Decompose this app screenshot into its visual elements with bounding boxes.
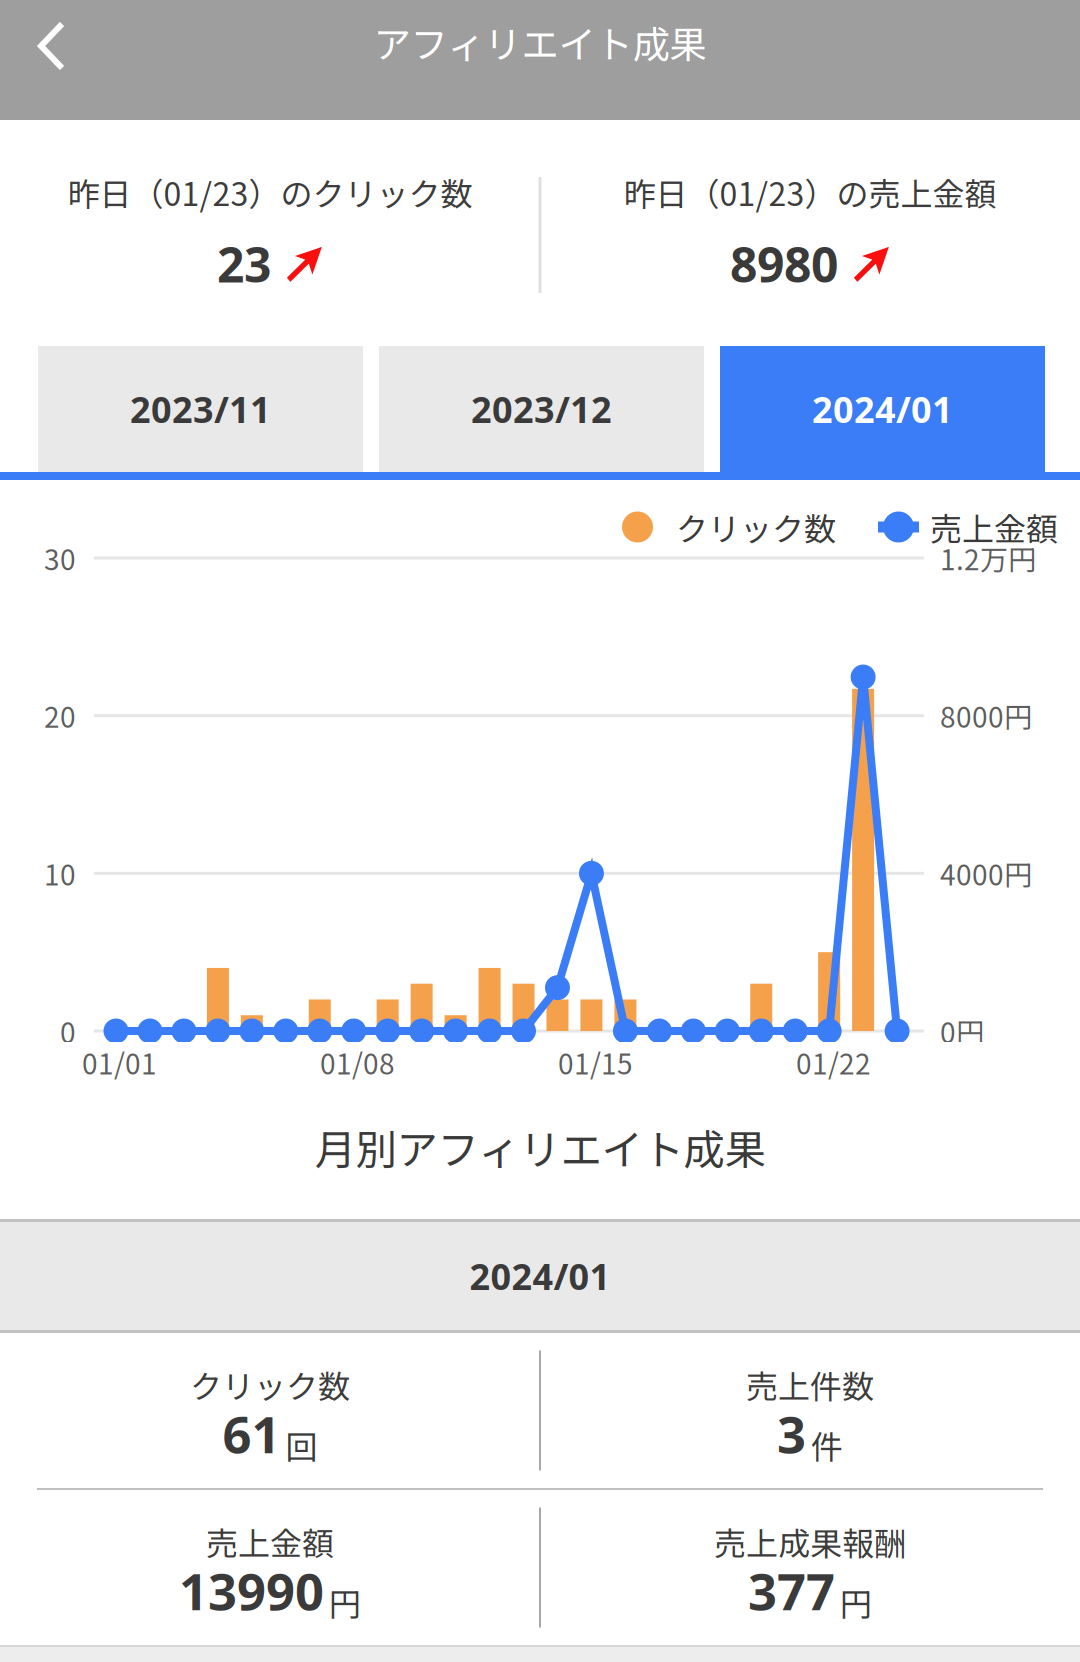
staticText: 昨日（01/23）のクリック数	[67, 169, 472, 215]
staticText: 4000円	[940, 853, 1032, 894]
staticText: 2024/01	[812, 384, 953, 433]
staticText: 8980	[730, 231, 838, 297]
button[interactable]: 2023/11	[38, 346, 363, 472]
staticText: 61	[222, 1399, 280, 1468]
staticText: 円	[329, 1579, 361, 1625]
staticText: 30	[44, 538, 76, 578]
button[interactable]: 2024/01	[720, 346, 1045, 472]
staticText: 売上件数	[746, 1361, 874, 1408]
staticText: 23	[217, 231, 271, 297]
staticText: 回	[285, 1422, 317, 1468]
staticText: 2023/12	[471, 384, 612, 433]
staticText: 件	[811, 1422, 843, 1468]
staticText: 01/08	[320, 1042, 395, 1082]
staticText: 0	[60, 1011, 76, 1051]
staticText: 円	[840, 1579, 872, 1625]
staticText: 10	[44, 853, 76, 894]
staticText: 377	[748, 1556, 835, 1625]
staticText: 3	[777, 1399, 806, 1468]
button[interactable]: 2023/12	[379, 346, 704, 472]
staticText: 1.2万円	[940, 538, 1036, 578]
button[interactable]: Back	[0, 0, 92, 118]
staticText: 01/01	[82, 1042, 157, 1082]
staticText: 20	[44, 695, 76, 736]
staticText: 昨日（01/23）の売上金額	[623, 169, 996, 215]
staticText: 月別アフィリエイト成果	[314, 1117, 765, 1177]
staticText: クリック数	[676, 504, 836, 550]
staticText: 01/22	[796, 1042, 871, 1082]
staticText: 13990	[179, 1556, 324, 1625]
staticText: 0円	[940, 1011, 984, 1051]
staticText: クリック数	[190, 1361, 350, 1408]
staticText: 2023/11	[130, 384, 271, 433]
staticText: アフィリエイト成果	[373, 15, 706, 69]
staticText: 売上成果報酬	[714, 1518, 906, 1565]
staticText: 2024/01	[469, 1251, 610, 1300]
staticText: 01/15	[558, 1042, 633, 1082]
staticText: 売上金額	[930, 504, 1058, 550]
staticText: 8000円	[940, 695, 1032, 736]
staticText: 売上金額	[206, 1518, 334, 1565]
